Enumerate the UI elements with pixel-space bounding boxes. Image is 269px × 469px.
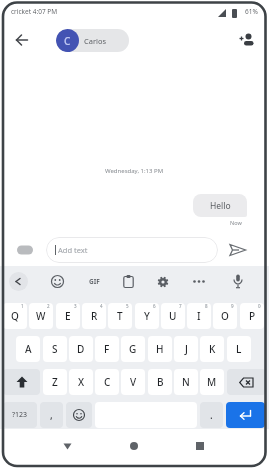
staticText: X (78, 375, 85, 389)
button[interactable]: N (174, 369, 198, 395)
button[interactable]: M (200, 369, 224, 395)
staticText: M (207, 375, 217, 389)
staticText: GIF (89, 277, 100, 286)
button[interactable] (66, 402, 92, 428)
staticText: 7 (179, 303, 182, 309)
staticText: K (209, 342, 216, 356)
staticText: R (91, 309, 98, 323)
button[interactable]: B (148, 369, 172, 395)
button[interactable]: , (40, 402, 63, 428)
staticText: S (52, 342, 58, 356)
button[interactable]: I (187, 303, 211, 329)
button[interactable]: P (240, 303, 264, 329)
staticText: B (157, 375, 164, 389)
button[interactable]: G (121, 336, 145, 362)
staticText: 6 (153, 303, 156, 309)
button[interactable] (186, 432, 214, 460)
button[interactable] (3, 369, 40, 395)
button[interactable] (10, 28, 34, 52)
staticText: 8 (205, 303, 208, 309)
button[interactable] (227, 369, 266, 395)
staticText: Y (144, 309, 150, 323)
staticText: E (65, 309, 71, 323)
staticText: 3 (74, 303, 77, 309)
staticText: G (129, 342, 137, 356)
button[interactable]: Q (3, 303, 27, 329)
button[interactable]: V (121, 369, 145, 395)
staticText: A (25, 342, 32, 356)
button[interactable]: . (200, 402, 223, 428)
button[interactable]: L (227, 336, 251, 362)
staticText: Add text (58, 245, 88, 255)
staticText: ?123 (12, 410, 28, 420)
button[interactable]: S (43, 336, 67, 362)
button[interactable] (119, 273, 137, 290)
button[interactable]: ?123 (3, 402, 37, 428)
staticText: Carlos (84, 36, 107, 46)
button[interactable]: R (82, 303, 106, 329)
button[interactable]: Z (43, 369, 67, 395)
staticText: I (197, 309, 201, 323)
button[interactable]: A (16, 336, 40, 362)
staticText: 4 (100, 303, 103, 309)
button[interactable]: Hello (193, 194, 247, 217)
staticText: Z (52, 375, 58, 389)
staticText: V (130, 375, 137, 389)
staticText: O (221, 309, 229, 323)
button[interactable] (154, 273, 172, 290)
staticText: D (77, 342, 85, 356)
staticText: 0 (258, 303, 261, 309)
button[interactable]: F (95, 336, 119, 362)
staticText: 1 (21, 303, 24, 309)
staticText: N (182, 375, 190, 389)
staticText: J (185, 342, 188, 356)
staticText: L (236, 342, 242, 356)
button[interactable] (226, 402, 265, 428)
staticText: H (156, 342, 164, 356)
button[interactable] (229, 272, 247, 291)
staticText: P (249, 309, 256, 323)
button[interactable] (234, 28, 260, 52)
button[interactable]: O (213, 303, 237, 329)
staticText: 5 (126, 303, 129, 309)
button[interactable]: Add text (46, 237, 218, 263)
staticText: C (64, 34, 71, 48)
button[interactable]: T (108, 303, 132, 329)
button[interactable]: Y (135, 303, 159, 329)
button[interactable]: E (56, 303, 80, 329)
button[interactable] (190, 276, 208, 287)
staticText: , (50, 408, 53, 422)
button[interactable]: W (29, 303, 53, 329)
button[interactable]: J (174, 336, 198, 362)
button[interactable]: U (161, 303, 185, 329)
button[interactable]: X (69, 369, 93, 395)
staticText: 9 (231, 303, 234, 309)
button[interactable] (13, 240, 37, 260)
button[interactable] (48, 273, 66, 290)
button[interactable]: GIF (84, 275, 104, 288)
button[interactable]: K (200, 336, 224, 362)
staticText: U (169, 309, 177, 323)
button[interactable] (120, 432, 148, 460)
button[interactable]: C (56, 29, 129, 52)
staticText: Now (230, 219, 242, 226)
button[interactable] (9, 272, 28, 291)
button[interactable]: C (95, 369, 119, 395)
staticText: Hello (210, 200, 231, 212)
staticText: Q (11, 309, 19, 323)
staticText: W (36, 309, 46, 323)
button[interactable]: D (69, 336, 93, 362)
button[interactable]: H (148, 336, 172, 362)
staticText: 2 (47, 303, 50, 309)
button[interactable] (224, 240, 252, 260)
staticText: T (117, 309, 123, 323)
staticText: 61% (245, 7, 258, 16)
staticText: cricket 4:07 PM (11, 7, 58, 16)
staticText: C (104, 375, 111, 389)
staticText: Wednesday, 1:13 PM (105, 167, 164, 175)
button[interactable] (53, 432, 81, 460)
staticText: F (104, 342, 110, 356)
staticText: . (210, 408, 213, 422)
